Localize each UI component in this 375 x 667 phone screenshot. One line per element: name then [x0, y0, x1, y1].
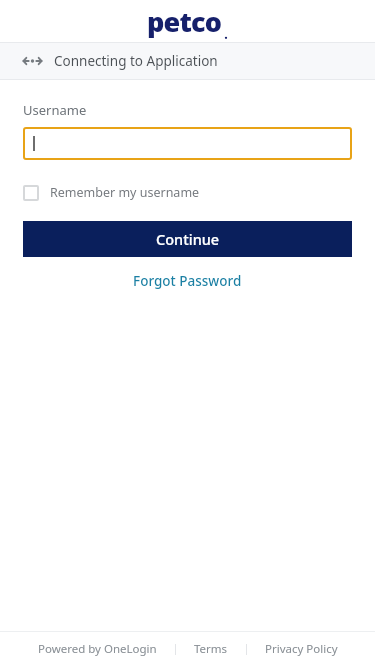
- staticText: Terms: [194, 641, 228, 657]
- button[interactable]: Remember my username: [23, 182, 200, 203]
- staticText: Username: [23, 101, 87, 119]
- staticText: Forgot Password: [133, 272, 242, 290]
- button[interactable]: Username input: [23, 127, 352, 160]
- staticText: Connecting to Application: [54, 52, 218, 70]
- staticText: Remember my username: [50, 184, 200, 201]
- button[interactable]: Forgot Password: [127, 269, 248, 293]
- button[interactable]: Continue: [23, 221, 352, 257]
- staticText: Powered by OneLogin: [38, 641, 157, 657]
- button[interactable]: Privacy Policy: [261, 641, 342, 657]
- button[interactable]: Terms: [190, 641, 232, 657]
- staticText: Continue: [156, 229, 220, 249]
- staticText: petco: [147, 3, 222, 40]
- button[interactable]: Powered by OneLogin: [34, 641, 161, 657]
- other: Connecting: [23, 55, 42, 67]
- staticText: Privacy Policy: [265, 641, 338, 657]
